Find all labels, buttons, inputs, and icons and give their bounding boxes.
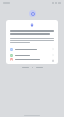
button[interactable]: Terms of Service: [35, 66, 44, 69]
button[interactable]: Privacy: [10, 52, 54, 58]
button[interactable]: Account: [10, 46, 54, 52]
button[interactable]: Personalization: [10, 58, 54, 61]
button[interactable]: Privacy Policy: [21, 66, 30, 69]
